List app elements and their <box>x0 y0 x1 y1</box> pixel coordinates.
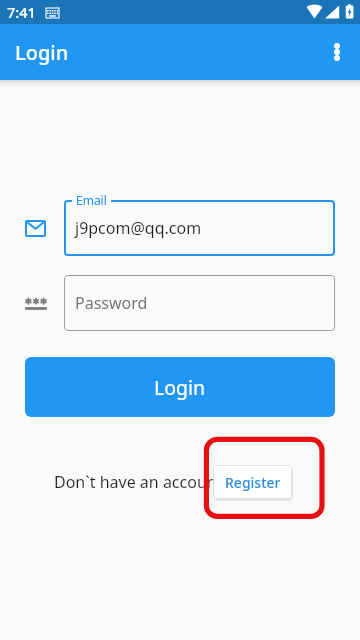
staticText: 7:41 <box>7 2 36 22</box>
button[interactable]: More options <box>312 28 360 76</box>
staticText: Register <box>225 473 281 492</box>
button[interactable]: Register <box>213 465 292 499</box>
button[interactable]: Password <box>64 275 335 331</box>
button[interactable]: j9pcom@qq.com <box>64 200 335 256</box>
staticText: Password <box>75 292 148 314</box>
button[interactable]: Login <box>25 357 335 417</box>
staticText: Login <box>154 374 206 401</box>
staticText: j9pcom@qq.com <box>75 217 202 239</box>
staticText: Don`t have an account? <box>54 471 230 493</box>
staticText: Email <box>76 192 107 208</box>
staticText: Login <box>15 39 69 66</box>
